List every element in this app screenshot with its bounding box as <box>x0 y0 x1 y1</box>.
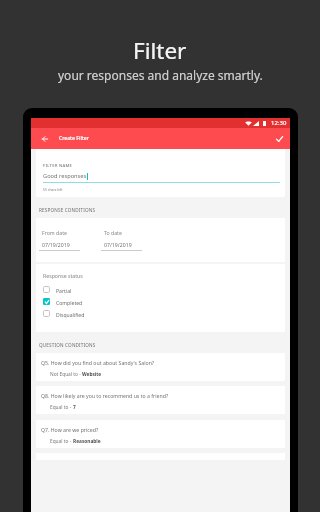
staticText: To date <box>104 229 122 236</box>
button[interactable]: Q7. How are we priced? <box>36 420 285 448</box>
staticText: From date <box>42 229 67 236</box>
staticText: QUESTION CONDITIONS <box>39 342 96 348</box>
staticText: Equal to - <box>50 404 73 411</box>
button[interactable]: Save filter <box>269 128 290 149</box>
staticText: your responses and analyze smartly. <box>58 67 263 83</box>
staticText: Not Equal to - <box>50 371 82 378</box>
staticText: Reasonable <box>73 438 101 445</box>
button[interactable]: Q8. How likely are you to recommend us t… <box>36 386 285 414</box>
button[interactable]: Disqualified <box>43 310 278 317</box>
staticText: Q5. How did you find out about Sandy's S… <box>41 359 155 366</box>
staticText: Q7. How are we priced? <box>41 426 99 433</box>
staticText: Filter <box>133 35 187 66</box>
staticText: FILTER NAME <box>43 163 73 169</box>
staticText: Equal to - <box>50 438 73 445</box>
staticText: Disqualified <box>56 312 85 319</box>
staticText: 55 chars left <box>43 187 63 192</box>
staticText: RESPONSE CONDITIONS <box>39 207 96 213</box>
staticText: Completed <box>56 300 83 307</box>
staticText: Create Filter <box>59 135 89 142</box>
staticText: Good responses <box>43 172 87 180</box>
staticText: Q8. How likely are you to recommend us t… <box>41 392 169 399</box>
button[interactable]: From date <box>39 229 80 251</box>
button[interactable]: Partial <box>43 286 278 293</box>
staticText: 07/19/2019 <box>104 241 132 248</box>
button[interactable]: Completed <box>43 298 278 305</box>
staticText: 12:30 <box>271 119 287 127</box>
staticText: Partial <box>56 288 72 295</box>
staticText: 07/19/2019 <box>42 241 70 248</box>
staticText: Website <box>82 371 102 378</box>
button[interactable]: To date <box>101 229 142 251</box>
staticText: Response status <box>43 272 83 279</box>
button[interactable]: Back <box>31 128 52 149</box>
staticText: 7 <box>73 404 76 411</box>
button[interactable]: Q5. How did you find out about Sandy's S… <box>36 353 285 381</box>
